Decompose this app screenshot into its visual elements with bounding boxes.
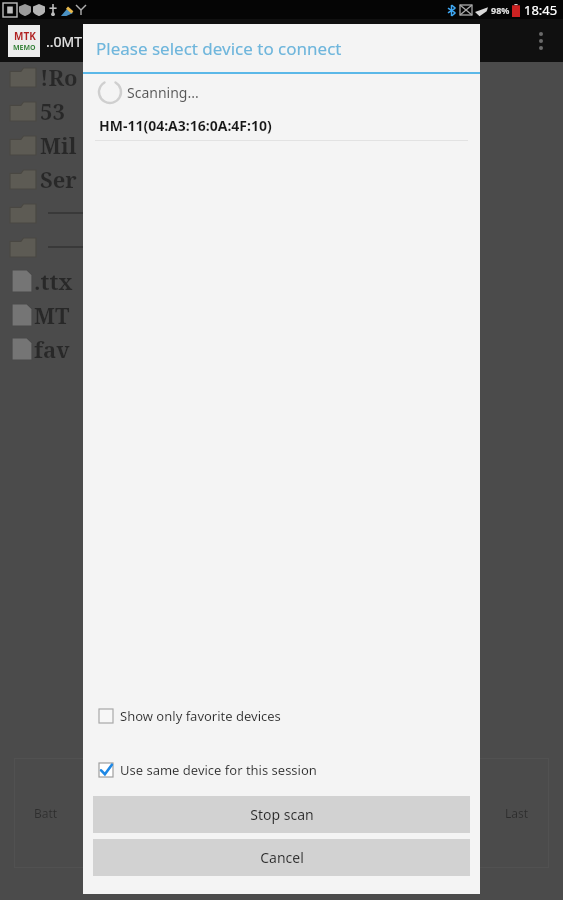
staticText: 98% xyxy=(491,4,510,16)
staticText: MTK xyxy=(14,29,36,43)
staticText: MEMO xyxy=(13,43,36,53)
staticText: Scanning... xyxy=(127,83,199,102)
staticText: ..0MT xyxy=(46,32,82,51)
staticText: 18:45 xyxy=(524,1,558,19)
staticText: Mil xyxy=(40,130,77,160)
button[interactable]: HM-11(04:A3:16:0A:4F:10) xyxy=(83,110,480,140)
button[interactable]: Show only favorite devices xyxy=(83,701,480,731)
button[interactable]: Stop scan xyxy=(93,796,470,833)
staticText: !Ro xyxy=(40,62,78,92)
staticText: Batt xyxy=(34,805,58,821)
staticText: fav xyxy=(34,334,70,364)
staticText: HM-11(04:A3:16:0A:4F:10) xyxy=(99,116,272,135)
staticText: Please select device to connect xyxy=(96,37,342,60)
staticText: .ttx xyxy=(34,266,73,296)
staticText: Ser xyxy=(40,164,77,194)
staticText: Show only favorite devices xyxy=(120,707,281,725)
button[interactable]: Cancel xyxy=(93,839,470,876)
staticText: Last xyxy=(505,805,529,821)
button[interactable]: More options xyxy=(519,19,563,62)
staticText: Stop scan xyxy=(250,805,314,824)
staticText: 53 xyxy=(40,96,71,126)
staticText: MT xyxy=(34,300,70,330)
staticText: Use same device for this session xyxy=(120,761,317,779)
button[interactable]: Use same device for this session xyxy=(83,755,480,785)
staticText: Cancel xyxy=(260,848,304,867)
